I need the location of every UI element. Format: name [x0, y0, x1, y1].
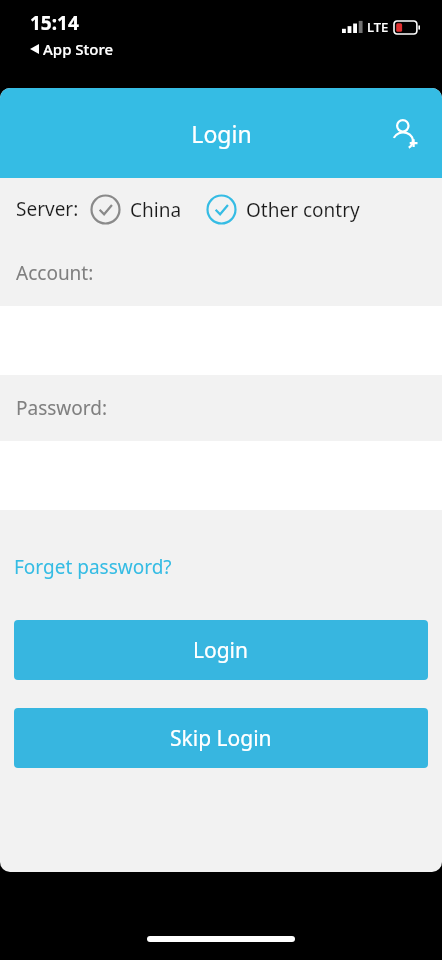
staticText: Account:	[16, 260, 94, 286]
button[interactable]: Login	[14, 620, 428, 680]
staticText: App Store	[43, 39, 114, 59]
staticText: Login	[193, 636, 249, 665]
staticText: LTE	[367, 18, 389, 36]
button[interactable]: Forget password?	[14, 554, 172, 580]
staticText: Forget password?	[14, 554, 172, 580]
staticText: 15:14	[30, 10, 79, 36]
button[interactable]: Skip Login	[14, 708, 428, 768]
button[interactable]: China	[90, 194, 182, 225]
button[interactable]: Add account	[380, 109, 428, 157]
staticText: Skip Login	[170, 724, 272, 753]
staticText: Login	[191, 118, 252, 149]
staticText: Password:	[16, 395, 108, 421]
staticText: Other contry	[246, 197, 360, 223]
button[interactable]: Other contry	[206, 194, 360, 225]
staticText: China	[130, 197, 182, 223]
staticText: Server:	[16, 196, 79, 222]
